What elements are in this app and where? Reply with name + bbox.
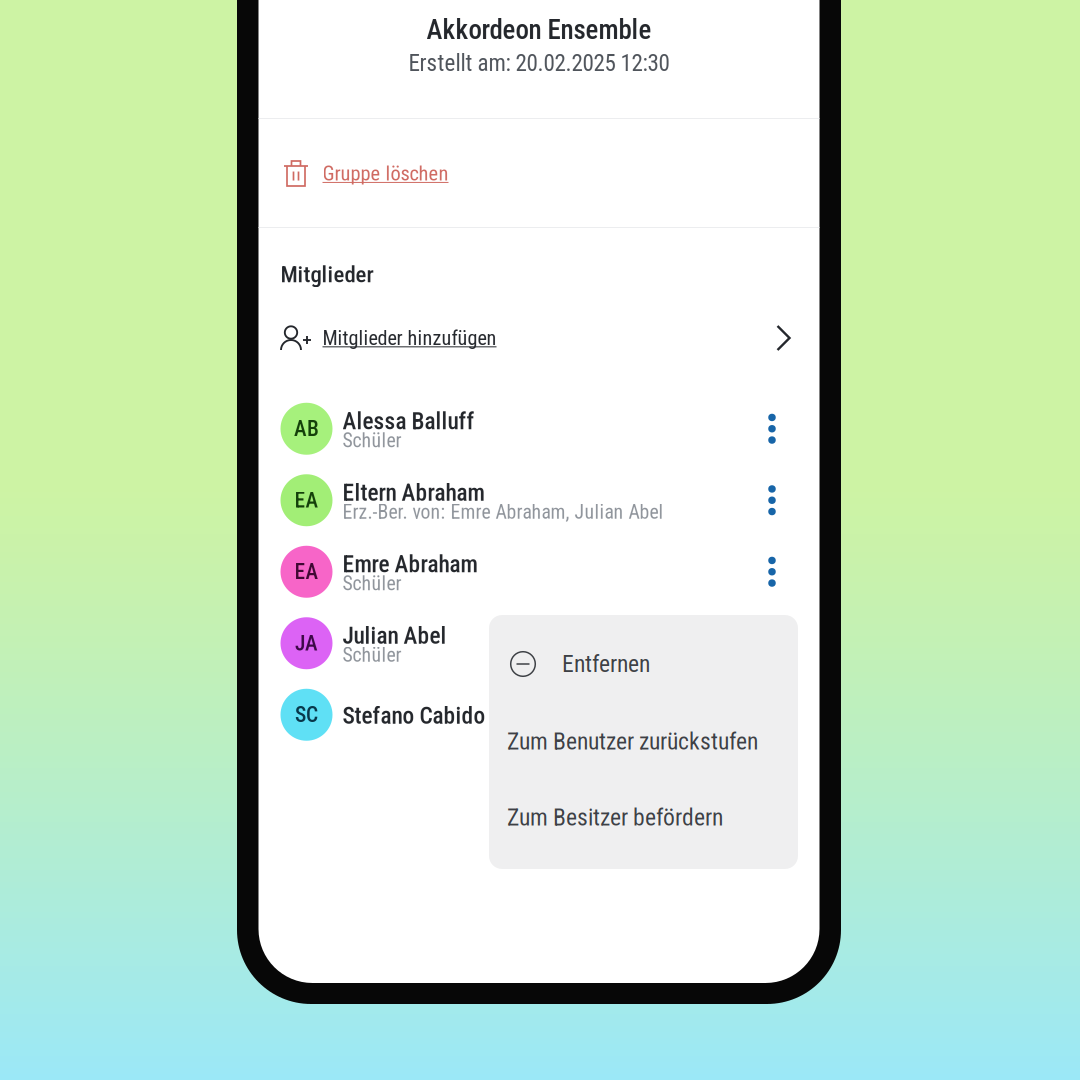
staticText: Zum Benutzer zurückstufen bbox=[507, 728, 758, 755]
staticText: Schüler bbox=[342, 429, 401, 452]
staticText: Mitglieder hinzufügen bbox=[322, 326, 496, 350]
staticText: EA bbox=[294, 488, 318, 513]
staticText: Schüler bbox=[342, 643, 401, 666]
staticText: Schüler bbox=[342, 572, 401, 595]
staticText: Akkordeon Ensemble bbox=[426, 14, 651, 46]
button[interactable]: Weitere Optionen bbox=[749, 613, 795, 673]
staticText: Alessa Balluff bbox=[342, 407, 474, 435]
staticText: EA bbox=[294, 559, 318, 584]
staticText: Erstellt am: 20.02.2025 12:30 bbox=[408, 50, 669, 77]
staticText: Entfernen bbox=[562, 650, 650, 678]
button[interactable]: Gruppe löschen bbox=[258, 119, 819, 228]
button[interactable]: Zum Benutzer zurückstufen bbox=[489, 703, 798, 780]
staticText: AB bbox=[294, 416, 319, 441]
button[interactable]: Weitere Optionen bbox=[749, 685, 795, 745]
staticText: Zum Besitzer befördern bbox=[507, 804, 723, 831]
staticText: Eltern Abraham bbox=[342, 479, 484, 506]
button[interactable]: Weitere Optionen bbox=[749, 399, 795, 459]
staticText: Erz.-Ber. von: Emre Abraham, Julian Abel bbox=[342, 500, 663, 523]
staticText: Julian Abel bbox=[342, 622, 446, 649]
staticText: Emre Abraham bbox=[342, 550, 477, 578]
button[interactable]: Weitere Optionen bbox=[749, 470, 795, 530]
button[interactable]: Weitere Optionen bbox=[749, 542, 795, 602]
staticText: JA bbox=[295, 631, 318, 656]
staticText: Mitglieder bbox=[280, 261, 373, 288]
staticText: SC bbox=[295, 702, 318, 727]
staticText: Gruppe löschen bbox=[322, 161, 448, 185]
button[interactable]: Zum Besitzer befördern bbox=[489, 779, 798, 856]
button[interactable]: Entfernen bbox=[489, 615, 798, 713]
button[interactable]: Mitglieder hinzufügen bbox=[258, 311, 819, 365]
staticText: Stefano Cabido bbox=[342, 702, 485, 729]
